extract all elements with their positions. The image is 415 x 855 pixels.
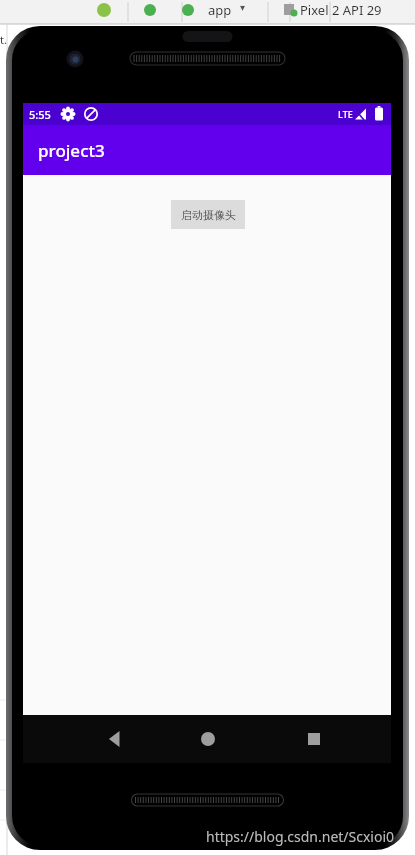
button[interactable]: Home	[178, 715, 238, 763]
staticText: Pixel 2 API 29	[300, 1, 382, 19]
staticText: LTE	[338, 108, 353, 120]
button[interactable]: 启动摄像头	[171, 200, 245, 229]
button[interactable]: Back	[85, 715, 145, 763]
staticText: 启动摄像头	[181, 208, 236, 222]
button[interactable]: Recents	[284, 715, 344, 763]
staticText: t.	[0, 32, 7, 47]
staticText: 5:55	[29, 107, 51, 122]
staticText: project3	[38, 139, 105, 162]
staticText: app	[208, 1, 232, 19]
staticText: ▾	[240, 2, 246, 14]
staticText: https://blog.csdn.net/Scxioi0	[206, 827, 395, 846]
